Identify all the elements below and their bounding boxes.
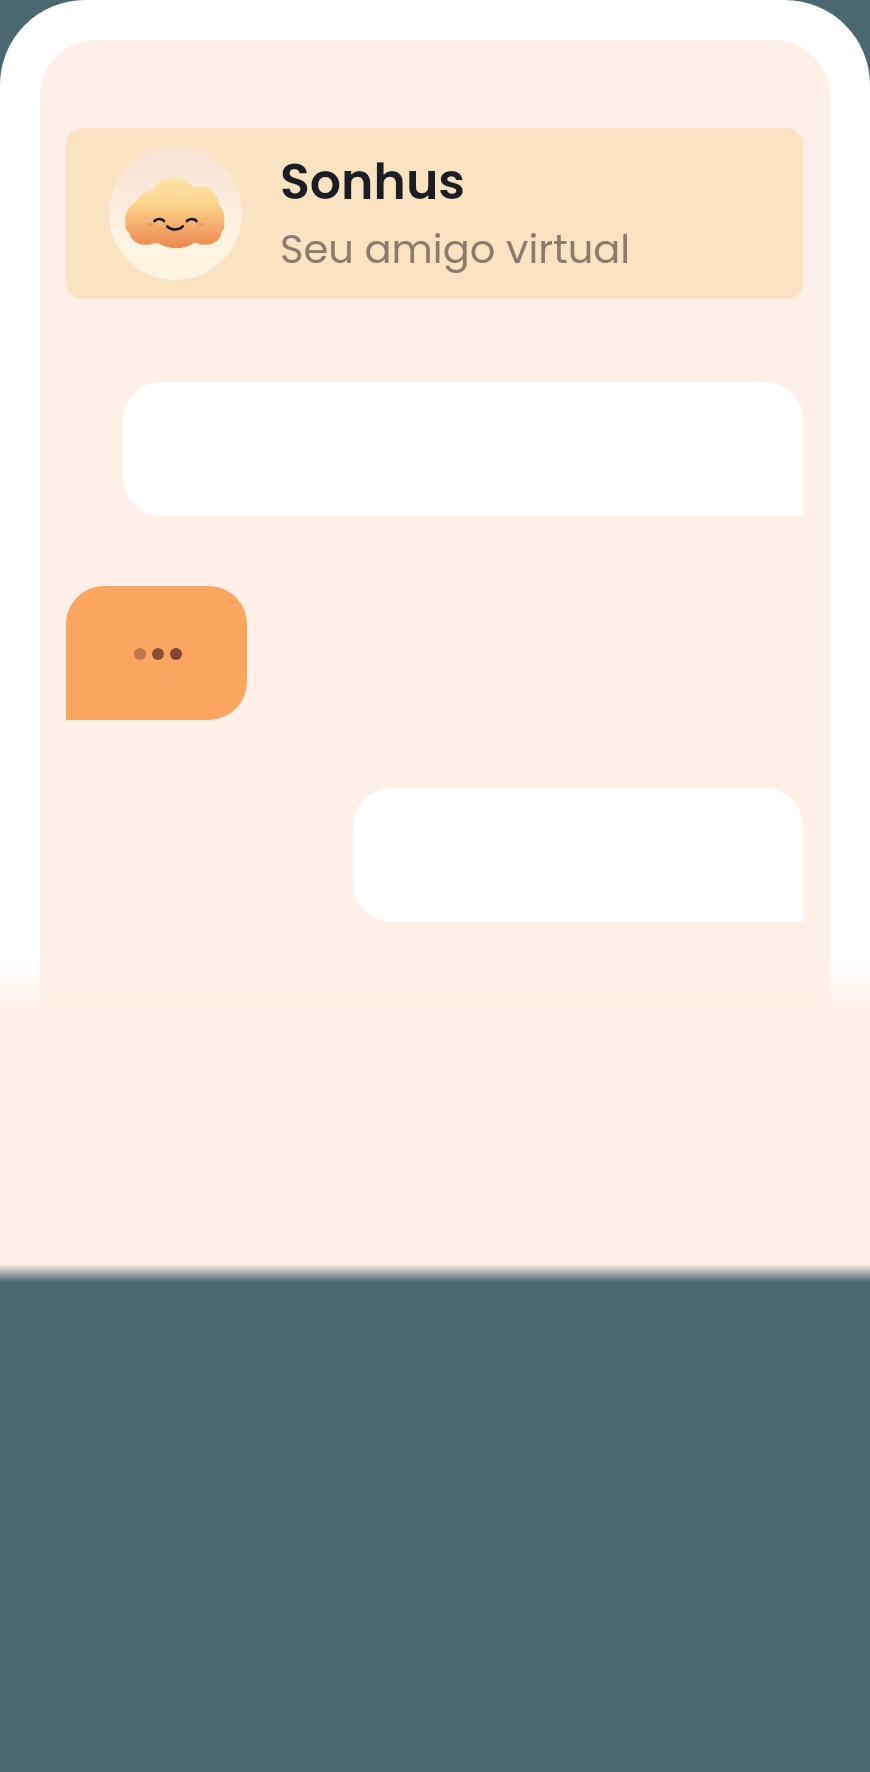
button[interactable]: Sonhus (66, 128, 803, 299)
button[interactable]: Digitando (66, 586, 247, 720)
staticText: Seu amigo virtual (280, 221, 631, 277)
staticText: Sonhus (280, 148, 465, 217)
